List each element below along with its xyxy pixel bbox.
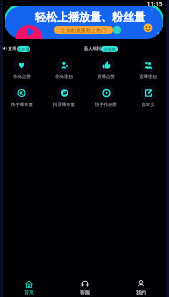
staticText: 直播	[8, 46, 17, 51]
button[interactable]: 快手播放量	[0, 86, 43, 108]
button[interactable]: 直播涨粉	[127, 58, 169, 80]
button[interactable]: 抖音播放量	[43, 86, 85, 108]
staticText: 直播点赞	[97, 74, 115, 80]
staticText: 直播涨粉	[139, 74, 157, 80]
button[interactable]: 轻松上播放量、粉丝量	[5, 6, 163, 39]
button[interactable]: 作品涨粉	[43, 58, 85, 80]
staticText: 新人福利	[84, 46, 101, 51]
staticText: 去开播	[17, 47, 30, 52]
button[interactable]: 直播点赞	[85, 58, 127, 80]
staticText: 作品点赞	[13, 74, 31, 80]
button[interactable]: 快手作品赞	[85, 86, 127, 108]
button[interactable]: 作品点赞	[0, 58, 43, 80]
button[interactable]: 直播	[2, 44, 30, 53]
staticText: 作品涨粉	[55, 74, 73, 80]
button[interactable]: 自定义	[127, 86, 169, 108]
button[interactable]: 首页	[0, 277, 57, 297]
staticText: 客服	[80, 289, 90, 295]
staticText: 自定义	[141, 102, 155, 108]
button[interactable]: 客服	[57, 277, 113, 297]
staticText: 首页	[24, 289, 34, 295]
staticText: 快手播放量	[11, 102, 33, 108]
button[interactable]: 我的	[113, 277, 169, 297]
staticText: 快手作品赞	[95, 102, 117, 108]
staticText: 11:15	[147, 0, 163, 6]
staticText: 我的	[136, 289, 146, 295]
button[interactable]: 新人福利	[84, 44, 118, 53]
staticText: 让你的直播秒上热门	[61, 27, 106, 33]
staticText: 抖音播放量	[53, 102, 75, 108]
staticText: 去领取	[103, 47, 116, 52]
staticText: 轻松上播放量、粉丝量	[35, 10, 145, 24]
